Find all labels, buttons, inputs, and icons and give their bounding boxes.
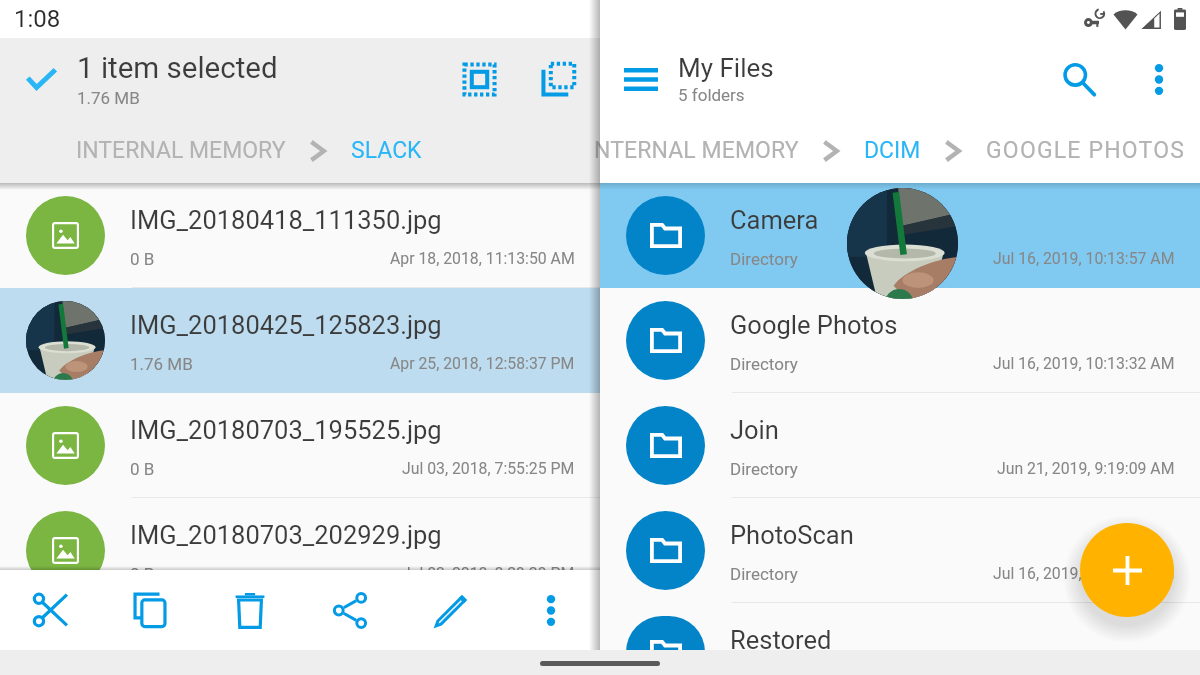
staticText: Apr 25, 2018, 12:58:37 PM [390,354,575,373]
staticText: Join [730,415,779,445]
button[interactable]: DCIM [864,137,921,164]
button[interactable]: Delete [219,579,281,641]
staticText: 0 B [130,249,155,269]
button[interactable]: IMG_20180425_125823.jpg [0,288,600,393]
staticText: Jul 16, 2019, 10:13:32 AM [993,354,1175,373]
staticText: Jul 16, 2019, 10:13:57 AM [993,249,1175,268]
staticText: Camera [730,205,819,235]
button[interactable]: Select range [529,50,587,108]
button[interactable]: More options [1130,50,1188,108]
staticText: Directory [730,564,798,584]
staticText: My Files [678,53,774,83]
staticText: Directory [730,354,798,374]
button[interactable]: SLACK [351,137,422,164]
button[interactable]: Google Photos [600,288,1200,393]
staticText: 1.76 MB [130,354,193,374]
staticText: Jun 21, 2019, 9:19:09 AM [997,459,1175,478]
button[interactable]: More options [520,579,582,641]
button[interactable]: NTERNAL MEMORY [594,137,799,164]
button[interactable]: Share [320,579,382,641]
staticText: IMG_20180425_125823.jpg [130,310,442,340]
staticText: 1:08 [14,5,61,33]
button[interactable]: Rename [420,579,482,641]
staticText: 1 item selected [77,51,278,86]
button[interactable]: Search [1050,50,1108,108]
button[interactable]: GOOGLE PHOTOS [986,137,1186,164]
staticText: 5 folders [678,85,745,105]
staticText: 0 B [130,564,155,584]
staticText: Jul 03, 2018, 7:55:25 PM [402,459,575,478]
staticText: Directory [730,249,798,269]
button[interactable]: IMG_20180703_202929.jpg [0,498,600,603]
button[interactable]: Select all [450,50,508,108]
staticText: 0 B [130,459,155,479]
staticText: IMG_20180703_202929.jpg [130,520,442,550]
staticText: IMG_20180418_111350.jpg [130,205,442,235]
staticText: Jul 16, 2019, 10:13:04 AM [993,564,1175,583]
button[interactable]: INTERNAL MEMORY [76,137,286,164]
button[interactable]: IMG_20180703_195525.jpg [0,393,600,498]
button[interactable]: Copy [119,579,181,641]
button[interactable]: Camera [600,183,1200,288]
staticText: PhotoScan [730,520,854,550]
staticText: Apr 18, 2018, 11:13:50 AM [390,249,575,268]
staticText: Directory [730,459,798,479]
button[interactable]: Menu [614,52,668,106]
button[interactable]: Cut [19,579,81,641]
button[interactable]: IMG_20180418_111350.jpg [0,183,600,288]
staticText: Jul 03, 2018, 8:29:29 PM [402,564,575,583]
button[interactable]: Restored [600,603,1200,675]
staticText: Restored [730,625,832,655]
button[interactable]: PhotoScan [600,498,1200,603]
staticText: 1.76 MB [77,88,140,108]
button[interactable]: Deselect [13,51,69,107]
button[interactable]: Add [1080,523,1174,617]
staticText: IMG_20180703_195525.jpg [130,415,442,445]
button[interactable]: Join [600,393,1200,498]
staticText: Google Photos [730,310,898,340]
